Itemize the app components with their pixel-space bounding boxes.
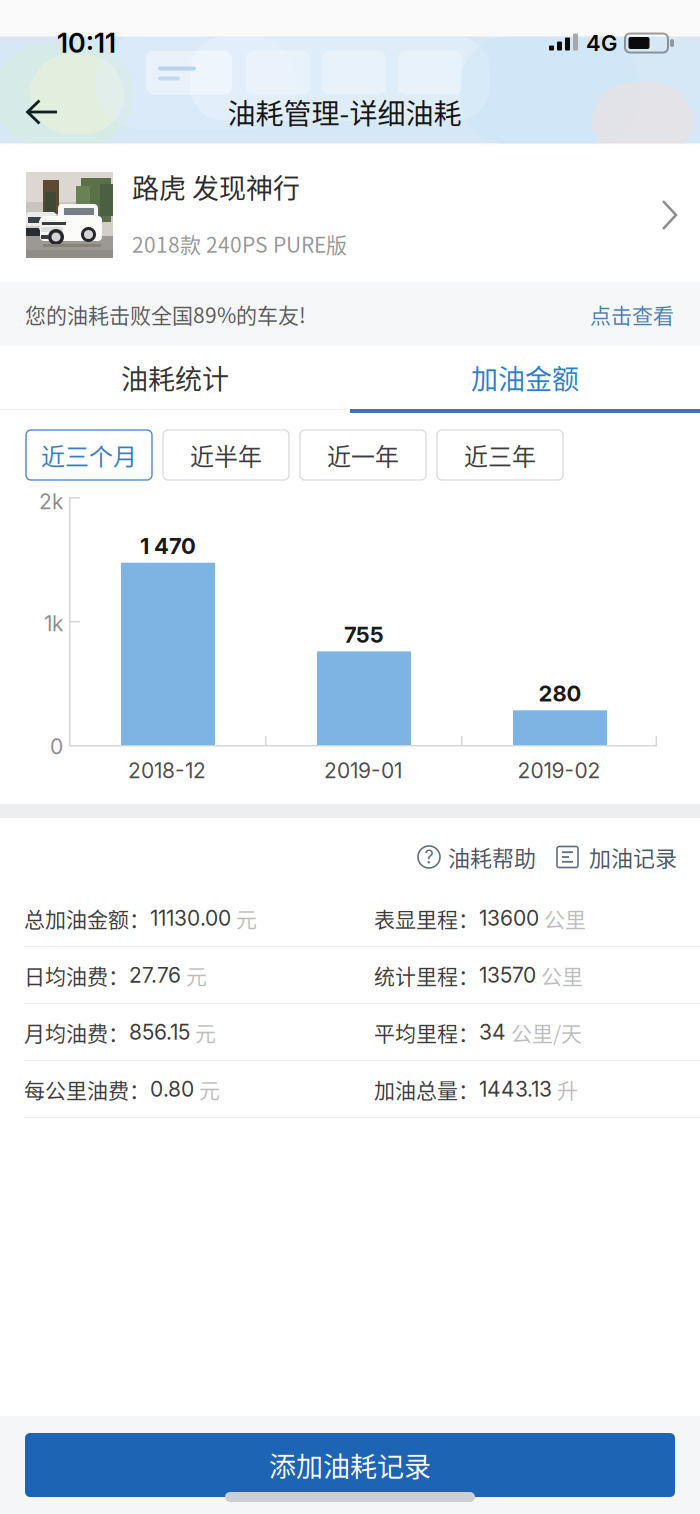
staticText: 280 — [538, 680, 581, 707]
staticText: 平均里程： — [374, 1017, 479, 1047]
staticText: 加油金额 — [471, 358, 579, 397]
staticText: ? — [424, 846, 433, 868]
staticText: 统计里程： — [374, 960, 479, 990]
button[interactable]: 油耗统计 — [0, 346, 350, 413]
staticText: 2k — [39, 489, 63, 514]
staticText: 元 — [181, 960, 207, 990]
button[interactable]: 近半年 — [163, 430, 289, 480]
staticText: 公里/天 — [506, 1017, 582, 1047]
staticText: 0 — [50, 734, 63, 759]
staticText: 升 — [552, 1074, 578, 1104]
staticText: 总加油金额： — [24, 903, 150, 933]
staticText: 1443.13 — [479, 1076, 552, 1102]
staticText: 油耗统计 — [121, 358, 229, 397]
button[interactable]: 路虎 发现神行 — [0, 148, 700, 282]
staticText: 755 — [344, 621, 384, 648]
staticText: 856.15 — [129, 1019, 190, 1045]
staticText: 表显里程： — [374, 903, 479, 933]
staticText: 月均油费： — [24, 1017, 129, 1047]
staticText: 2019-01 — [324, 758, 402, 783]
staticText: 近三个月 — [41, 438, 137, 472]
staticText: 加油总量： — [374, 1074, 479, 1104]
staticText: 日均油费： — [24, 960, 129, 990]
button[interactable]: 加油金额 — [350, 346, 700, 413]
staticText: 1 470 — [140, 533, 196, 559]
button[interactable]: ? — [418, 841, 536, 873]
staticText: 公里 — [536, 960, 583, 990]
staticText: 13600 — [479, 905, 539, 931]
staticText: 元 — [231, 903, 257, 933]
staticText: 2019-02 — [517, 758, 600, 783]
staticText: 元 — [190, 1017, 216, 1047]
staticText: 13570 — [479, 962, 536, 988]
staticText: 0.80 — [150, 1076, 194, 1102]
staticText: 油耗管理-详细油耗 — [227, 92, 461, 132]
staticText: 近半年 — [190, 438, 262, 472]
staticText: 2018款 240PS PURE版 — [132, 228, 347, 259]
button[interactable]: 近三年 — [437, 430, 563, 480]
button[interactable]: 近一年 — [300, 430, 426, 480]
staticText: 路虎 发现神行 — [132, 167, 300, 206]
staticText: 您的油耗击败全国89%的车友! — [25, 299, 306, 329]
button[interactable]: 加油记录 — [557, 841, 677, 873]
staticText: 1k — [44, 611, 63, 636]
staticText: 11130.00 — [150, 905, 231, 931]
staticText: 近三年 — [464, 438, 536, 472]
staticText: 34 — [479, 1019, 506, 1045]
staticText: 油耗帮助 — [448, 841, 536, 873]
staticText: 4G — [586, 30, 617, 56]
button[interactable]: 返回 — [6, 79, 78, 145]
staticText: 添加油耗记录 — [269, 1445, 431, 1485]
staticText: 点击查看 — [590, 299, 674, 329]
staticText: 2018-12 — [128, 758, 206, 783]
staticText: 加油记录 — [589, 841, 677, 873]
staticText: 元 — [194, 1074, 220, 1104]
staticText: 10:11 — [57, 27, 116, 59]
staticText: 每公里油费： — [24, 1074, 150, 1104]
staticText: 近一年 — [327, 438, 399, 472]
button[interactable]: 近三个月 — [26, 430, 152, 480]
staticText: 公里 — [539, 903, 586, 933]
button[interactable]: 点击查看 — [576, 299, 674, 329]
staticText: 27.76 — [129, 962, 181, 988]
button[interactable]: 添加油耗记录 — [25, 1433, 675, 1497]
